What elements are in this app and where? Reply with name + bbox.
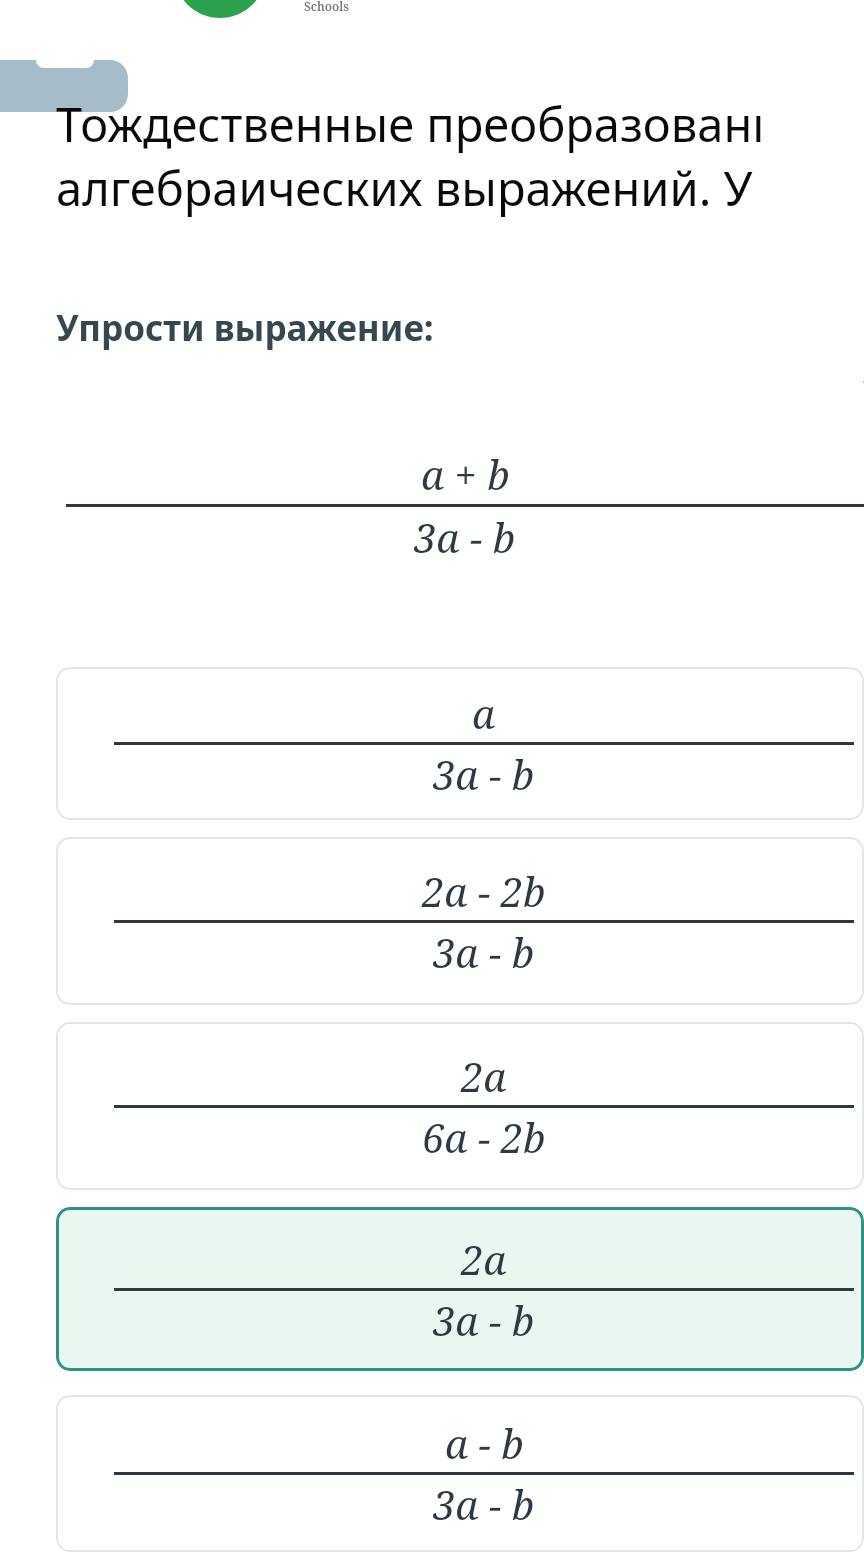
staticText: 6a − 2b (422, 1110, 546, 1164)
staticText: 3a − b (433, 747, 535, 801)
staticText: a (472, 686, 496, 740)
staticText: 2a (461, 1232, 507, 1286)
staticText: 2a (461, 1049, 507, 1103)
button[interactable]: a − b (56, 1395, 864, 1552)
staticText: 3a − b (433, 1477, 535, 1531)
staticText: 3a − b (433, 1293, 535, 1347)
staticText: алгебраических выражений. У (56, 156, 753, 220)
button[interactable]: 2a (56, 1207, 864, 1371)
staticText: a + b (421, 447, 510, 501)
staticText: 3a − b (414, 510, 516, 564)
button[interactable]: a (56, 667, 864, 820)
staticText: Тождественные преобразованı (56, 92, 765, 156)
button[interactable]: 2a (56, 1022, 864, 1190)
staticText: a − b (445, 1416, 524, 1470)
staticText: Schools (304, 0, 349, 14)
button[interactable]: 2a − 2b (56, 837, 864, 1005)
staticText: 3a − b (433, 925, 535, 979)
staticText: Упрости выражение: (56, 304, 434, 352)
staticText: 2a − 2b (422, 864, 546, 918)
